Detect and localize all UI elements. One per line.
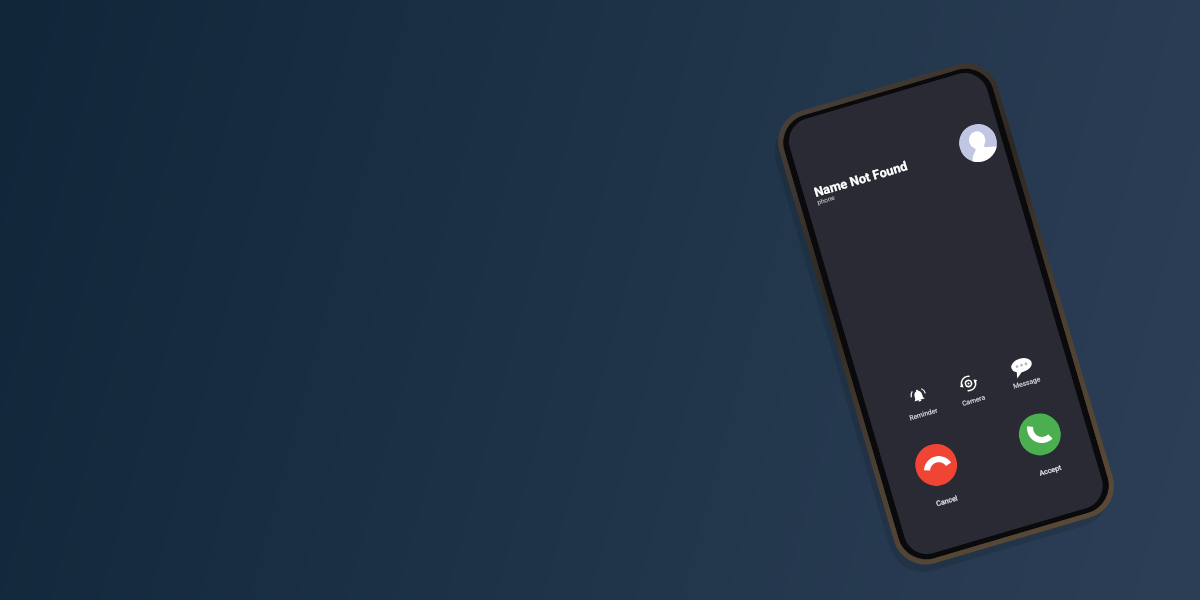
staticText: Reminder (898, 404, 948, 425)
staticText: Name Not Found (812, 158, 910, 200)
other: Accept call (1014, 408, 1066, 460)
staticText: Cancel (916, 488, 977, 513)
button[interactable]: Reminder (892, 380, 949, 425)
staticText: Camera (948, 390, 999, 412)
other: Decline call (910, 439, 962, 491)
button[interactable]: Contact avatar (954, 119, 1002, 167)
staticText: phone (816, 194, 836, 207)
staticText: Accept (1019, 457, 1081, 482)
button[interactable]: Camera (942, 367, 999, 412)
button[interactable]: Decline call (900, 436, 977, 513)
staticText: Message (1002, 372, 1052, 394)
button[interactable]: Accept call (1004, 405, 1081, 482)
button[interactable]: Message (995, 349, 1052, 394)
